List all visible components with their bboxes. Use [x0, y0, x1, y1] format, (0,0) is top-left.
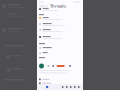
- button[interactable]: [37, 52, 83, 57]
- button[interactable]: Tool: [74, 86, 75, 88]
- button[interactable]: [37, 36, 83, 43]
- button[interactable]: Threads: [50, 3, 66, 9]
- button[interactable]: [37, 47, 83, 52]
- staticText: Inbox: [39, 3, 48, 9]
- button[interactable]: Inbox: [39, 3, 48, 9]
- staticText: Threads: [50, 3, 66, 9]
- button[interactable]: Tool: [66, 86, 67, 88]
- button[interactable]: [37, 29, 83, 36]
- button[interactable]: Compose: [46, 86, 48, 88]
- button[interactable]: [37, 23, 83, 29]
- button[interactable]: [37, 8, 83, 14]
- button[interactable]: Tool: [78, 86, 79, 88]
- button[interactable]: Tool: [70, 86, 71, 88]
- button[interactable]: [37, 17, 83, 23]
- button[interactable]: Tool: [62, 86, 63, 88]
